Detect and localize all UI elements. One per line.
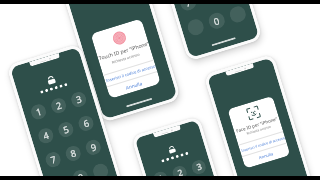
button[interactable] [51,174,70,180]
button[interactable]: Inserisci il codice di accesso [238,132,287,156]
staticText: Richiesta accesso [246,124,272,136]
button[interactable]: 1 [29,102,48,121]
staticText: Richiesta accesso [111,51,140,65]
button[interactable]: 3 [190,158,208,176]
button[interactable]: Annulla [242,143,290,169]
staticText: Touch ID per “iPhone” [98,40,150,62]
button[interactable]: 1 [135,120,238,180]
button[interactable]: 4 [36,126,55,145]
staticText: 2 [176,166,184,179]
staticText: 7 [49,152,58,167]
staticText: Face ID per “iPhone” [235,115,278,134]
button[interactable]: Annulla [107,72,161,99]
button[interactable] [91,162,110,180]
button[interactable]: Touch ID per “iPhone” [55,0,178,120]
button[interactable]: 9 [84,138,103,157]
button[interactable]: 7 [44,150,62,169]
button[interactable]: 8 [199,0,219,6]
button[interactable]: 0 [71,168,90,180]
button[interactable]: 1 [145,0,259,58]
staticText: 3 [74,92,84,106]
button[interactable]: 6 [77,114,95,133]
button[interactable]: 7 [178,0,198,12]
button[interactable]: 3 [69,90,88,109]
staticText: 5 [62,122,71,136]
staticText: 1 [157,172,165,180]
staticText: 4 [41,128,51,143]
button[interactable]: 1 [10,47,123,180]
button[interactable]: 2 [49,96,68,115]
staticText: 0 [76,170,86,180]
staticText: 1 [34,105,44,119]
button[interactable]: 1 [152,170,169,180]
staticText: Inserisci il codice di accesso [105,63,156,83]
staticText: Inserisci il codice di accesso [240,135,286,153]
staticText: 3 [195,160,203,173]
staticText: Annulla [125,80,143,91]
button[interactable]: 0 [207,11,227,31]
button[interactable]: Inserisci il codice di accesso [103,60,157,86]
staticText: 8 [69,146,78,160]
button[interactable] [228,4,248,24]
staticText: 9 [89,140,98,154]
button[interactable]: 8 [64,144,83,163]
staticText: 0 [212,14,222,28]
staticText: 6 [82,116,91,130]
staticText: 2 [54,98,64,113]
button[interactable] [186,17,206,37]
button[interactable]: 5 [57,120,75,139]
button[interactable]: 2 [171,164,188,180]
button[interactable]: Face ID per “iPhone” [207,57,314,180]
staticText: Annulla [258,151,274,161]
staticText: 7 [183,0,193,10]
